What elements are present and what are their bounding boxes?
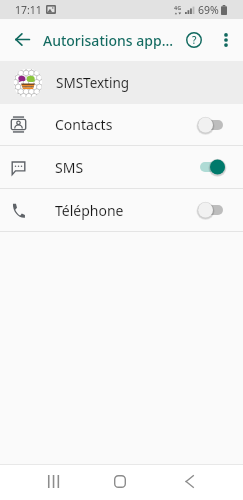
staticText: Contacts [55,115,113,134]
button[interactable]: Accueil [98,464,141,499]
button[interactable]: Contacts [0,104,243,145]
button[interactable]: Aide [176,19,212,61]
button[interactable]: Plus d'options [212,19,240,61]
button[interactable]: SMSTexting [0,61,243,104]
staticText: SMSTexting [56,74,130,92]
button[interactable]: Téléphone [0,189,243,231]
button[interactable]: Applications récentes [31,464,74,499]
staticText: Téléphone [55,201,124,220]
staticText: 69% [198,3,219,17]
button[interactable]: SMS [0,146,243,188]
staticText: SMS [55,158,84,177]
button[interactable]: Retour [0,19,43,61]
button[interactable]: Retour [168,464,211,499]
button[interactable]: Activé [198,157,225,177]
button[interactable]: Désactivé [198,200,225,220]
button[interactable]: Désactivé [198,115,225,135]
staticText: Autorisations app... [43,31,174,50]
staticText: 4G [174,4,182,11]
staticText: 17:11 [15,3,42,17]
staticText: ? [192,33,197,47]
